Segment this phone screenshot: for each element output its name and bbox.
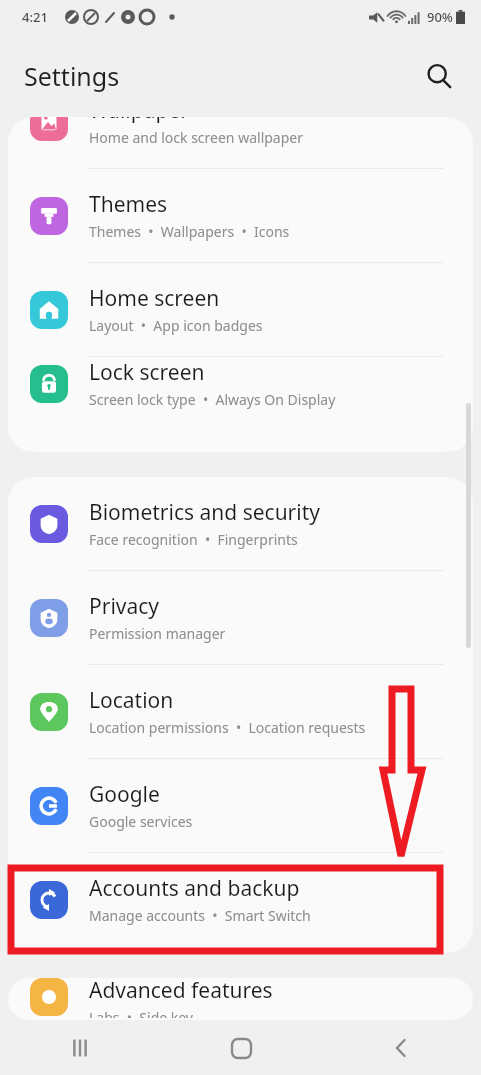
button[interactable]: Themes xyxy=(8,169,473,263)
button[interactable]: Accounts and backup xyxy=(8,853,473,946)
staticText: Google services xyxy=(89,812,193,831)
staticText: Accounts and backup xyxy=(89,874,300,903)
button[interactable]: Wallpaper xyxy=(8,117,473,169)
button[interactable]: Advanced features xyxy=(8,978,473,1018)
button[interactable]: Location xyxy=(8,665,473,759)
staticText: Wallpaper xyxy=(89,117,189,125)
staticText: Screen lock type • Always On Display xyxy=(89,390,336,409)
staticText: Advanced features xyxy=(89,978,273,1005)
staticText: Location permissions • Location requests xyxy=(89,718,366,737)
button[interactable]: Privacy xyxy=(8,571,473,665)
staticText: Settings xyxy=(24,59,120,93)
staticText: Layout • App icon badges xyxy=(89,316,263,335)
staticText: Home and lock screen wallpaper xyxy=(89,128,303,147)
button[interactable]: Home xyxy=(214,1021,268,1075)
staticText: Google xyxy=(89,780,160,809)
staticText: Lock screen xyxy=(89,358,205,387)
staticText: Biometrics and security xyxy=(89,498,320,527)
staticText: Privacy xyxy=(89,592,160,621)
button[interactable]: Recents xyxy=(53,1021,107,1075)
staticText: Themes • Wallpapers • Icons xyxy=(89,222,290,241)
staticText: Themes xyxy=(89,190,168,219)
staticText: Manage accounts • Smart Switch xyxy=(89,906,311,925)
staticText: Home screen xyxy=(89,284,220,313)
staticText: 90% xyxy=(427,8,453,26)
staticText: 4:21 xyxy=(22,8,48,26)
staticText: Location xyxy=(89,686,174,715)
button[interactable]: Biometrics and security xyxy=(8,477,473,571)
button[interactable]: Back xyxy=(374,1021,428,1075)
staticText: Face recognition • Fingerprints xyxy=(89,530,298,549)
button[interactable]: Google xyxy=(8,759,473,853)
staticText: Labs • Side key xyxy=(89,1008,194,1018)
button[interactable]: Lock screen xyxy=(8,357,473,410)
button[interactable]: Search xyxy=(419,56,459,96)
staticText: Permission manager xyxy=(89,624,226,643)
button[interactable]: Home screen xyxy=(8,263,473,357)
